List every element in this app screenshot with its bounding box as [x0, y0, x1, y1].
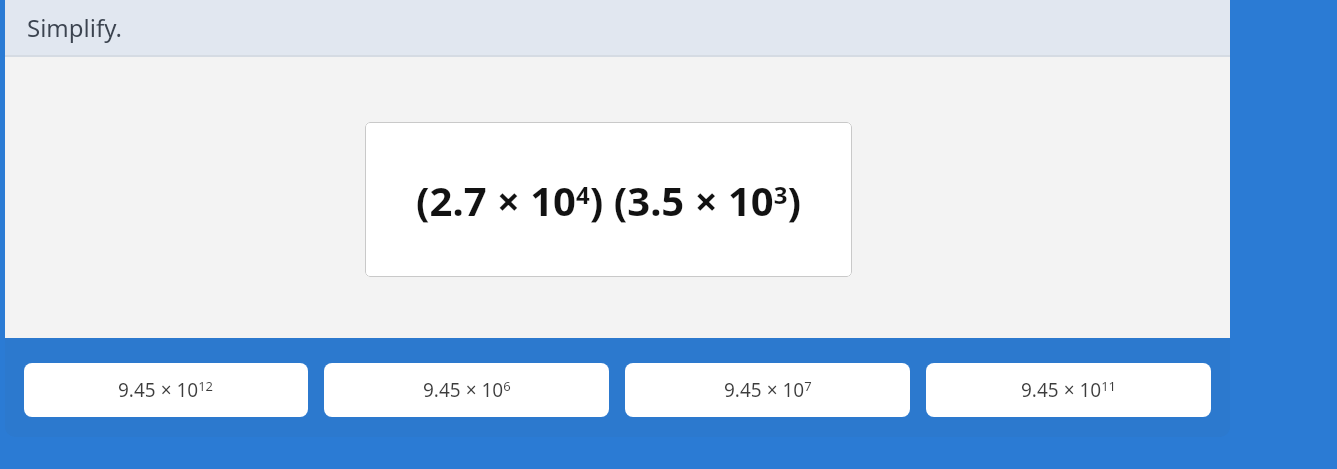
staticText: 9.45 × 107: [724, 377, 812, 403]
staticText: 9.45 × 106: [423, 377, 511, 403]
button[interactable]: 9.45 × 1011: [926, 363, 1211, 417]
button[interactable]: 9.45 × 1012: [24, 363, 308, 417]
staticText: 9.45 × 1011: [1021, 377, 1117, 403]
button[interactable]: 9.45 × 107: [625, 363, 910, 417]
staticText: 9.45 × 1012: [118, 377, 214, 403]
button[interactable]: 9.45 × 106: [324, 363, 609, 417]
staticText: (2.7 × 104) (3.5 × 103): [416, 173, 801, 227]
staticText: Simplify.: [27, 11, 122, 44]
